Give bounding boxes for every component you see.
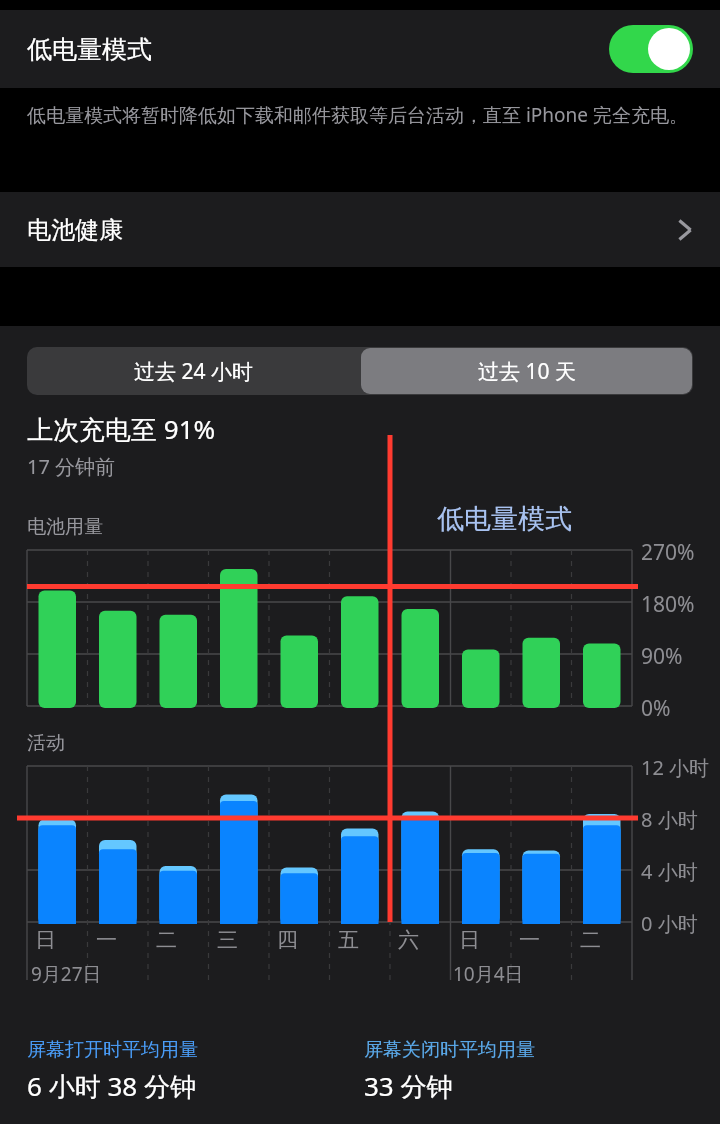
staticText: 过去 10 天 bbox=[478, 357, 576, 386]
staticText: 五 bbox=[338, 927, 399, 953]
staticText: 上次充电至 91% bbox=[27, 411, 216, 447]
staticText: 0% bbox=[641, 694, 671, 723]
staticText: 电池健康 bbox=[27, 215, 123, 245]
button[interactable]: 电池健康 bbox=[0, 192, 720, 267]
staticText: 4 小时 bbox=[641, 858, 698, 885]
staticText: 屏幕打开时平均用量 bbox=[27, 1038, 198, 1062]
staticText: 低电量模式 bbox=[27, 34, 152, 65]
staticText: 180% bbox=[641, 590, 695, 619]
staticText: 二 bbox=[156, 927, 217, 953]
staticText: 过去 24 小时 bbox=[134, 357, 253, 386]
staticText: 二 bbox=[580, 927, 641, 953]
staticText: 一 bbox=[96, 927, 157, 953]
staticText: 0 小时 bbox=[641, 910, 698, 937]
staticText: 屏幕关闭时平均用量 bbox=[364, 1038, 535, 1062]
staticText: 六 bbox=[398, 927, 459, 953]
staticText: 日 bbox=[35, 927, 96, 953]
button[interactable]: 过去 10 天 bbox=[361, 348, 692, 394]
staticText: 日 bbox=[459, 927, 520, 953]
staticText: 33 分钟 bbox=[364, 1068, 453, 1104]
staticText: 12 小时 bbox=[641, 754, 710, 781]
staticText: 17 分钟前 bbox=[27, 453, 116, 480]
staticText: 9月27日 bbox=[31, 961, 102, 987]
button[interactable]: 过去 24 小时 bbox=[27, 347, 360, 395]
staticText: 270% bbox=[641, 538, 695, 567]
staticText: 一 bbox=[519, 927, 580, 953]
staticText: 10月4日 bbox=[453, 961, 524, 987]
staticText: 低电量模式 bbox=[437, 502, 572, 536]
staticText: 四 bbox=[277, 927, 338, 953]
staticText: 8 小时 bbox=[641, 806, 698, 833]
staticText: 90% bbox=[641, 642, 683, 671]
staticText: 活动 bbox=[27, 731, 65, 755]
staticText: 电池用量 bbox=[27, 515, 103, 539]
staticText: 三 bbox=[217, 927, 278, 953]
staticText: 6 小时 38 分钟 bbox=[27, 1068, 196, 1104]
button[interactable]: 低电量模式开关 bbox=[609, 25, 693, 73]
staticText: 低电量模式将暂时降低如下载和邮件获取等后台活动，直至 iPhone 完全充电。 bbox=[27, 102, 688, 128]
button[interactable]: 低电量模式 bbox=[0, 10, 720, 88]
